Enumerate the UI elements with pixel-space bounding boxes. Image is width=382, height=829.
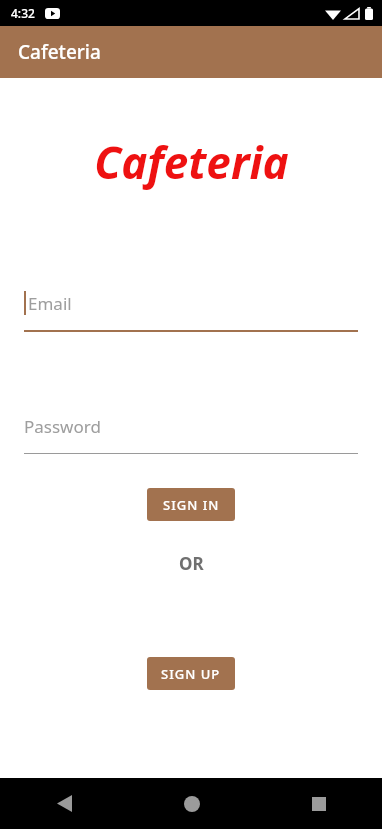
staticText: Password	[24, 415, 101, 438]
button[interactable]: Recent apps	[255, 778, 382, 829]
staticText: Cafeteria	[94, 132, 289, 192]
staticText: 4:32	[11, 5, 35, 21]
button[interactable]: Email	[24, 288, 358, 332]
button[interactable]: Home	[128, 778, 255, 829]
staticText: Email	[28, 292, 72, 315]
button[interactable]: Back	[0, 778, 128, 829]
button[interactable]: SIGN IN	[147, 488, 235, 521]
button[interactable]: SIGN UP	[147, 657, 235, 690]
staticText: SIGN IN	[163, 496, 220, 514]
staticText: SIGN UP	[161, 665, 221, 683]
button[interactable]: Password	[24, 411, 358, 454]
staticText: OR	[179, 552, 204, 575]
staticText: Cafeteria	[18, 39, 101, 65]
